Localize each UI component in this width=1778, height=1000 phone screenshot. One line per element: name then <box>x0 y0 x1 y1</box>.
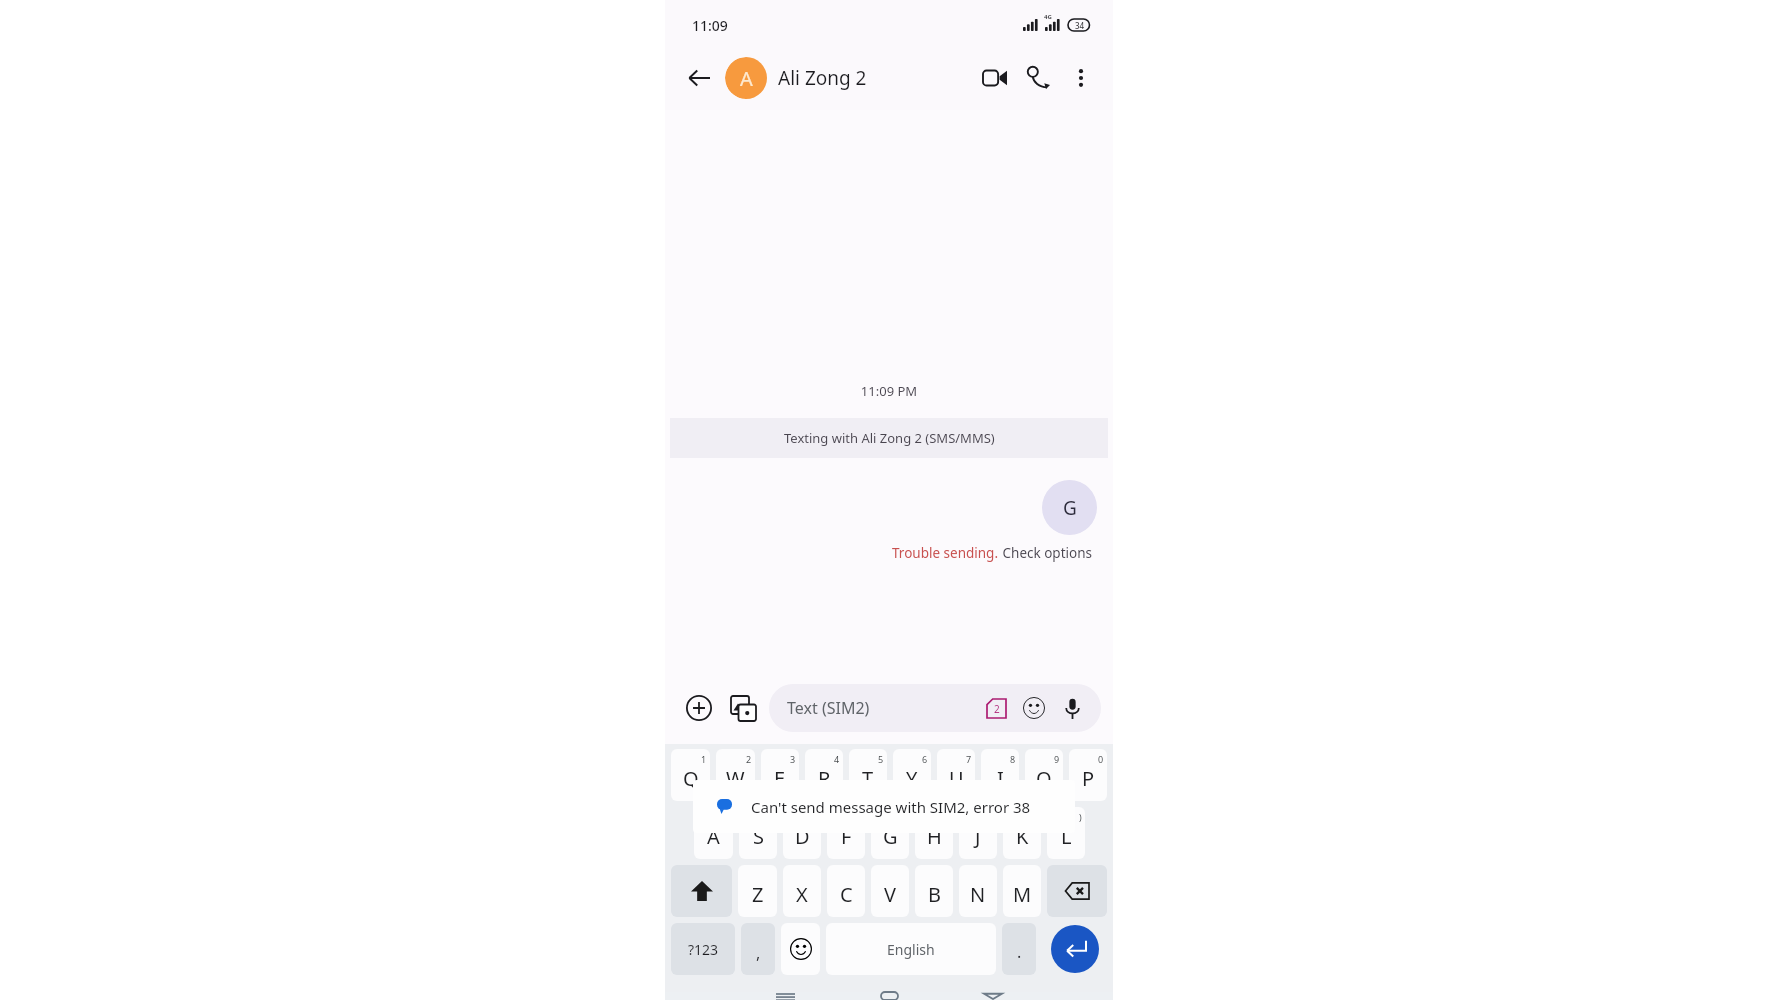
staticText: T <box>862 765 874 792</box>
staticText: 8 <box>1010 753 1016 765</box>
button[interactable]: Emoji keyboard <box>781 923 820 975</box>
staticText: Z <box>752 881 764 908</box>
button[interactable]: Emoji <box>1017 691 1051 725</box>
button[interactable]: R <box>805 749 843 801</box>
staticText: R <box>818 765 831 792</box>
button[interactable]: ?123 <box>671 923 735 975</box>
staticText: , <box>756 942 761 964</box>
staticText: 5 <box>878 753 884 765</box>
staticText: - <box>947 811 950 823</box>
button[interactable]: More options <box>1061 58 1101 98</box>
button[interactable]: Recent apps <box>754 992 816 1000</box>
staticText: A <box>740 65 753 92</box>
staticText: Y <box>906 765 918 792</box>
button[interactable]: L <box>1047 807 1085 859</box>
staticText: I <box>997 765 1004 792</box>
staticText: 1 <box>701 753 707 765</box>
staticText: 2 <box>994 702 1000 716</box>
button[interactable]: Y <box>893 749 931 801</box>
button[interactable]: N <box>959 865 997 917</box>
button[interactable]: Z <box>738 865 777 917</box>
button[interactable]: G <box>1042 480 1097 535</box>
staticText: C <box>840 881 853 908</box>
button[interactable]: . <box>1002 923 1036 975</box>
button[interactable]: Add attachment <box>677 686 721 730</box>
button[interactable]: Gallery <box>721 686 765 730</box>
button[interactable]: P <box>1069 749 1107 801</box>
button[interactable]: K <box>1003 807 1041 859</box>
staticText: 11:09 <box>692 16 728 35</box>
button[interactable]: Voice input <box>1055 691 1089 725</box>
staticText: M <box>1013 881 1032 908</box>
staticText: X <box>796 881 808 908</box>
button[interactable]: W <box>716 749 755 801</box>
button[interactable]: Q <box>671 749 710 801</box>
staticText: B <box>928 881 941 908</box>
staticText: 0 <box>1098 753 1104 765</box>
button[interactable]: Back <box>962 992 1024 1000</box>
button[interactable]: X <box>783 865 821 917</box>
button[interactable]: S <box>739 807 777 859</box>
button[interactable]: Shift <box>671 865 732 917</box>
button[interactable]: F <box>827 807 865 859</box>
button[interactable]: M <box>1003 865 1041 917</box>
staticText: L <box>1061 823 1072 850</box>
staticText: 6 <box>922 753 928 765</box>
staticText: Trouble sending. <box>892 544 999 562</box>
button[interactable]: O <box>1025 749 1063 801</box>
button[interactable]: H <box>915 807 953 859</box>
staticText: 2 <box>746 753 752 765</box>
staticText: Text (SIM2) <box>787 697 870 719</box>
button[interactable]: A <box>725 57 877 99</box>
staticText: A <box>707 823 720 850</box>
staticText: . <box>1017 941 1022 963</box>
staticText: U <box>949 765 964 792</box>
staticText: H <box>927 823 942 850</box>
staticText: 34 <box>1075 20 1085 31</box>
button[interactable]: Can't send message with SIM2, error 38 <box>693 780 1075 833</box>
staticText: English <box>887 940 935 959</box>
staticText: ?123 <box>688 940 719 959</box>
staticText: E <box>774 765 786 792</box>
staticText: 11:09 PM <box>665 382 1113 400</box>
button[interactable]: , <box>741 923 775 975</box>
staticText: - <box>859 811 862 823</box>
button[interactable]: C <box>827 865 865 917</box>
staticText: F <box>841 823 852 850</box>
staticText: Q <box>683 765 699 792</box>
button[interactable]: B <box>915 865 953 917</box>
staticText: Texting with Ali Zong 2 (SMS/MMS) <box>784 429 995 447</box>
staticText: V <box>884 881 896 908</box>
staticText: Can't send message with SIM2, error 38 <box>751 797 1031 817</box>
staticText: 9 <box>1054 753 1060 765</box>
button[interactable]: Call <box>1017 56 1061 100</box>
button[interactable]: A <box>694 807 733 859</box>
staticText: 3 <box>790 753 796 765</box>
button[interactable]: D <box>783 807 821 859</box>
staticText: N <box>970 881 986 908</box>
button[interactable]: Text (SIM2) <box>769 684 1101 732</box>
button[interactable]: Enter <box>1051 925 1099 973</box>
button[interactable]: Trouble sending. <box>892 544 1093 562</box>
staticText: $ <box>812 811 818 823</box>
button[interactable]: Backspace <box>1047 865 1107 917</box>
staticText: G <box>1063 495 1077 521</box>
button[interactable]: V <box>871 865 909 917</box>
staticText: S <box>753 823 764 850</box>
button[interactable]: I <box>981 749 1019 801</box>
button[interactable]: E <box>761 749 799 801</box>
button[interactable]: G <box>871 807 909 859</box>
staticText: 4G <box>1044 13 1052 21</box>
staticText: W <box>726 765 745 792</box>
staticText: J <box>975 823 981 850</box>
button[interactable]: J <box>959 807 997 859</box>
button[interactable]: U <box>937 749 975 801</box>
button[interactable]: SIM 2 <box>979 691 1013 725</box>
button[interactable]: T <box>849 749 887 801</box>
button[interactable]: English <box>826 923 996 975</box>
staticText: G <box>883 823 898 850</box>
button[interactable]: Home <box>858 992 920 1000</box>
button[interactable]: Back <box>677 56 721 100</box>
staticText: & <box>899 811 906 823</box>
button[interactable]: Video call <box>973 56 1017 100</box>
